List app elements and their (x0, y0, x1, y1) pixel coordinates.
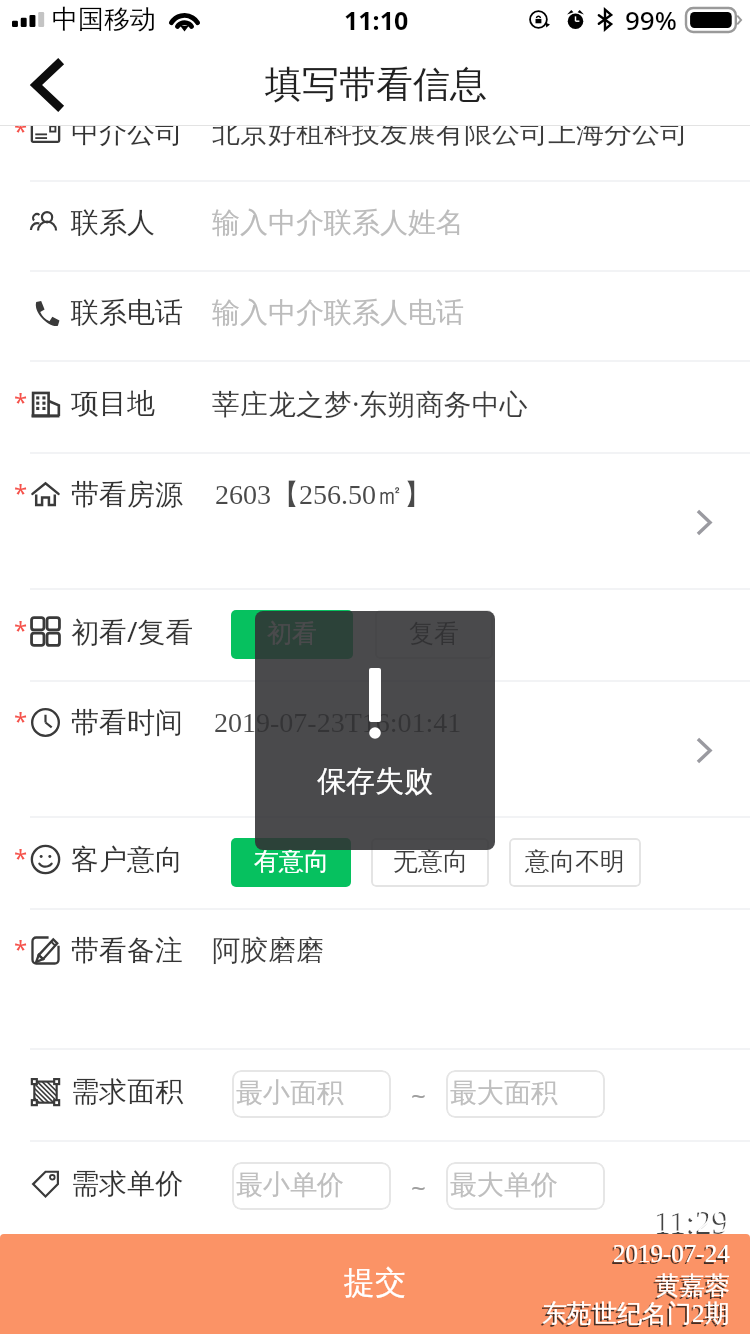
staticText: 提交 (344, 1263, 406, 1302)
staticText: 莘庄龙之梦·东朔商务中心 (212, 384, 528, 422)
staticText: 11:10 (344, 3, 409, 37)
button[interactable]: * (0, 908, 750, 998)
staticText: ~ (411, 1077, 426, 1112)
button[interactable]: * (0, 680, 750, 770)
staticText: * (14, 841, 28, 869)
button[interactable]: 需求面积 (0, 1048, 750, 1140)
button[interactable]: 最大单价 (446, 1162, 605, 1210)
staticText: 需求单价 (71, 1166, 183, 1201)
button[interactable]: 有意向 (231, 838, 351, 887)
staticText: 带看时间 (71, 705, 183, 740)
staticText: 客户意向 (71, 842, 183, 877)
staticText: 中介公司 (71, 115, 183, 150)
button[interactable]: 最小单价 (232, 1162, 391, 1210)
staticText: 复看 (409, 618, 459, 649)
button[interactable]: 意向不明 (509, 838, 641, 887)
staticText: 联系电话 (71, 295, 183, 330)
staticText: 黄嘉蓉 (653, 1272, 728, 1303)
staticText: 2019-07-24 (613, 1240, 730, 1268)
staticText: 2019-07-24 (611, 1242, 728, 1270)
staticText: 带看房源 (71, 477, 183, 512)
button[interactable]: * (0, 360, 750, 452)
button[interactable]: Open (696, 510, 712, 535)
staticText: * (14, 385, 28, 413)
button[interactable]: * (0, 588, 750, 680)
staticText: 黄嘉蓉 (655, 1270, 730, 1301)
button[interactable]: 最小面积 (232, 1070, 391, 1118)
staticText: 11:29 (654, 1205, 728, 1242)
staticText: * (14, 476, 28, 504)
staticText: 输入中介联系人姓名 (212, 205, 464, 240)
staticText: ~ (411, 1169, 426, 1204)
staticText: * (14, 114, 28, 142)
staticText: 联系人 (71, 205, 155, 240)
staticText: 阿胶磨磨 (212, 933, 324, 968)
staticText: 输入中介联系人电话 (212, 295, 464, 330)
button[interactable]: 联系人 (0, 180, 750, 270)
staticText: 无意向 (393, 846, 468, 877)
button[interactable]: 初看 (231, 610, 353, 659)
staticText: 中国移动 (52, 3, 156, 36)
staticText: 最大单价 (450, 1168, 558, 1202)
staticText: 2603【256.50㎡】 (215, 477, 432, 512)
staticText: 有意向 (254, 846, 329, 877)
staticText: * (14, 704, 28, 732)
staticText: 最小单价 (236, 1168, 344, 1202)
staticText: 东苑世纪名门2期 (542, 1298, 730, 1329)
button[interactable]: 最大面积 (446, 1070, 605, 1118)
staticText: 北京好租科技发展有限公司上海分公司 (212, 115, 688, 150)
staticText: 需求面积 (71, 1074, 183, 1109)
button[interactable]: * (0, 452, 750, 542)
button[interactable]: Back (4, 41, 88, 126)
staticText: * (14, 613, 28, 641)
button[interactable]: 提交 (0, 1234, 750, 1334)
staticText: 99% (625, 2, 677, 37)
button[interactable]: 需求单价 (0, 1140, 750, 1232)
button[interactable]: 复看 (375, 610, 493, 659)
staticText: 初看 (267, 618, 317, 649)
staticText: 项目地 (71, 386, 155, 421)
button[interactable]: * (0, 90, 750, 180)
staticText: 东苑世纪名门2期 (540, 1300, 728, 1331)
staticText: 保存失败 (317, 763, 433, 800)
button[interactable]: * (0, 816, 750, 908)
staticText: 初看/复看 (71, 612, 194, 650)
staticText: * (14, 932, 28, 960)
staticText: 11:29 (656, 1203, 730, 1240)
staticText: 带看备注 (71, 933, 183, 968)
staticText: 填写带看信息 (265, 61, 487, 108)
staticText: 意向不明 (525, 846, 625, 877)
button[interactable]: 无意向 (371, 838, 489, 887)
staticText: 最小面积 (236, 1076, 344, 1110)
staticText: 最大面积 (450, 1076, 558, 1110)
staticText: 2019-07-23T16:01:41 (214, 707, 462, 738)
button[interactable]: 联系电话 (0, 270, 750, 360)
button[interactable]: Open (696, 738, 712, 763)
